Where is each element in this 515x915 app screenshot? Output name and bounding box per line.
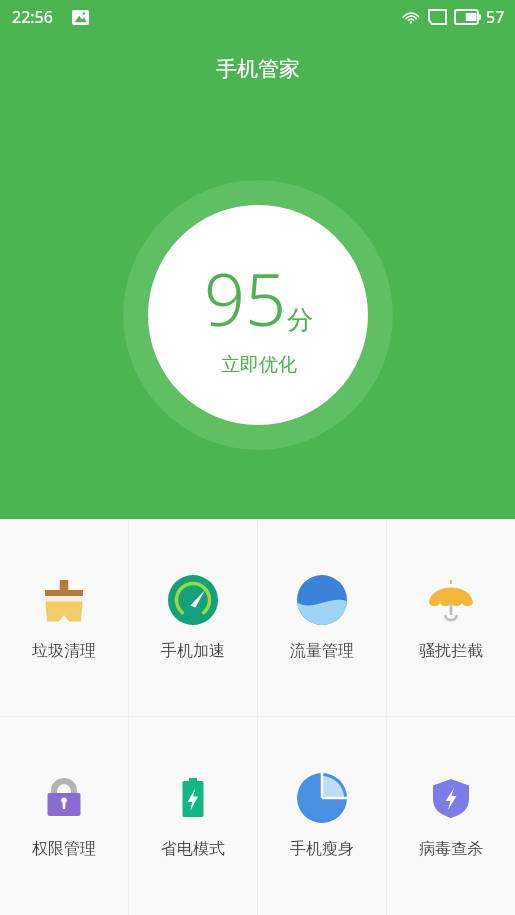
button[interactable]: 垃圾清理	[0, 519, 128, 716]
staticText: 立即优化	[221, 353, 297, 377]
button[interactable]: 手机加速	[129, 519, 257, 716]
staticText: 省电模式	[161, 839, 225, 859]
button[interactable]: 省电模式	[129, 717, 257, 915]
staticText: 57	[486, 6, 505, 28]
other: Signal	[429, 10, 446, 24]
staticText: 权限管理	[32, 839, 96, 859]
staticText: 骚扰拦截	[419, 641, 483, 661]
button[interactable]: 95	[123, 180, 393, 450]
staticText: 95	[204, 249, 287, 347]
staticText: 手机加速	[161, 641, 225, 661]
button[interactable]: 流量管理	[258, 519, 386, 716]
staticText: 垃圾清理	[32, 641, 96, 661]
button[interactable]: 手机瘦身	[258, 717, 386, 915]
staticText: 分	[287, 304, 313, 337]
staticText: 手机管家	[216, 56, 300, 82]
staticText: 22:56	[12, 6, 53, 28]
staticText: 流量管理	[290, 641, 354, 661]
other: Wi-Fi	[402, 8, 420, 26]
button[interactable]: 骚扰拦截	[387, 519, 515, 716]
button[interactable]: 病毒查杀	[387, 717, 515, 915]
other: Screenshot	[72, 9, 89, 26]
other: Battery	[455, 10, 481, 24]
staticText: 手机瘦身	[290, 839, 354, 859]
staticText: 病毒查杀	[419, 839, 483, 859]
button[interactable]: 权限管理	[0, 717, 128, 915]
